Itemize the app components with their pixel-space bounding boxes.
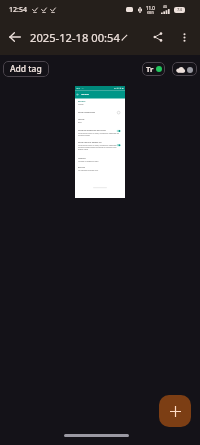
staticText: 11.0	[146, 5, 155, 11]
staticText: Show file properties anchored	[78, 129, 106, 131]
staticText: Tr	[146, 64, 154, 74]
staticText: 11.0	[114, 87, 116, 89]
staticText: 4G	[163, 5, 168, 9]
staticText: Lorem ipsum dolor sit amet, consectetur …	[78, 132, 119, 134]
button[interactable]: Share	[145, 24, 171, 50]
button[interactable]: Text recognition done	[142, 62, 165, 76]
staticText: Add tag	[10, 63, 42, 75]
staticText: Show name to default list	[78, 141, 102, 143]
button[interactable]: Add tag	[3, 61, 49, 77]
staticText: Lorem ipsum dolor sit amet, consectetur …	[78, 144, 119, 146]
staticText: General	[78, 100, 85, 102]
staticText: Theme	[78, 118, 84, 120]
staticText: 12:54	[9, 5, 27, 15]
staticText: 74	[177, 7, 182, 13]
staticText: An example problem here	[78, 169, 98, 171]
button[interactable]: Add	[159, 395, 191, 427]
staticText: KB/S	[147, 11, 154, 15]
staticText: Memory	[78, 157, 86, 159]
staticText: sed do eiusmod tempor incididunt ut labo…	[78, 146, 116, 148]
staticText: magna aliqua	[78, 148, 88, 150]
staticText: Show notifications	[78, 110, 95, 113]
staticText: Settings	[81, 93, 89, 96]
staticText: Recode	[78, 165, 85, 168]
staticText: 2025-12-18 00:54	[30, 30, 120, 45]
staticText: sed do eiusmod	[78, 134, 90, 136]
staticText: 10:12	[76, 87, 80, 89]
staticText: Dark	[78, 121, 82, 124]
button[interactable]: Cloud backup status	[172, 62, 197, 76]
button[interactable]: More options	[171, 24, 197, 50]
staticText: System	[78, 104, 84, 106]
button[interactable]: Screenshot preview	[75, 86, 125, 198]
button[interactable]: Back	[0, 22, 30, 52]
staticText: Nothing to download here	[78, 160, 98, 162]
